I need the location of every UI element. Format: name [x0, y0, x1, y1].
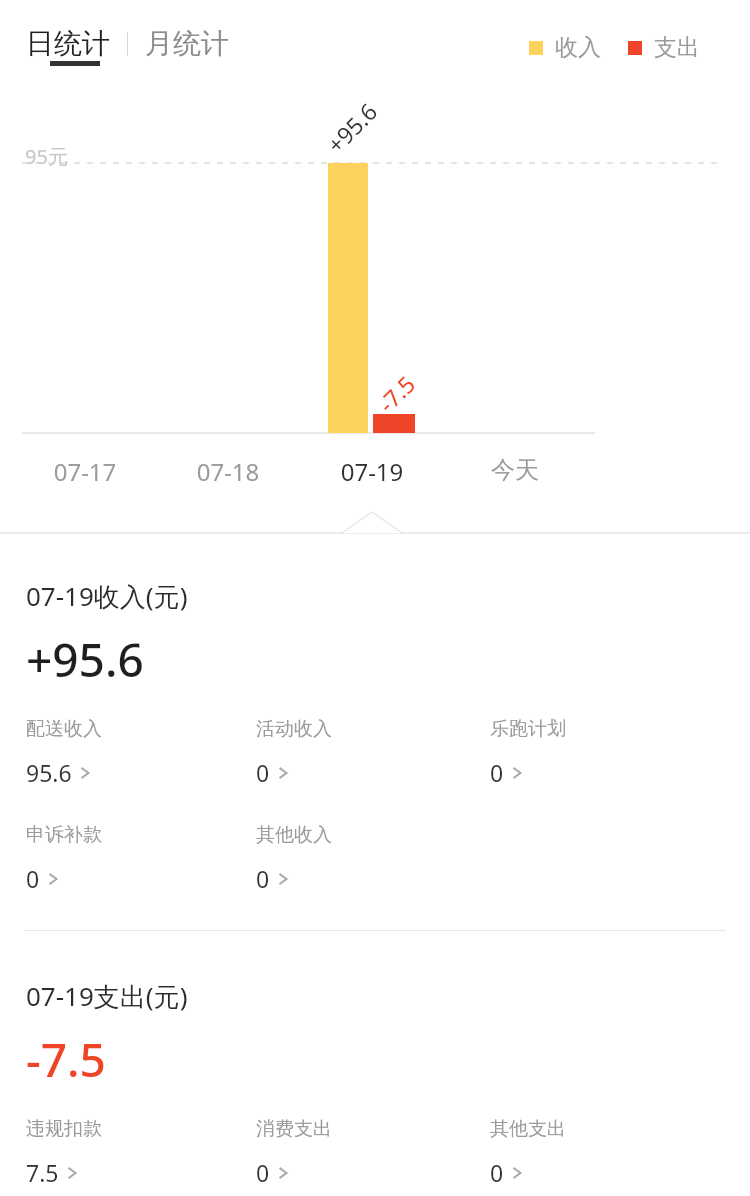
- button[interactable]: 活动收入: [256, 717, 490, 788]
- staticText: 月统计: [145, 26, 229, 61]
- other: 申诉补款: [48, 871, 58, 887]
- button[interactable]: 07-17: [35, 455, 135, 488]
- staticText: +95.6: [26, 628, 144, 691]
- staticText: 日统计: [26, 26, 110, 61]
- staticText: 07-17: [35, 455, 135, 488]
- staticText: 支出: [654, 33, 700, 62]
- staticText: 0: [256, 757, 270, 788]
- other: 活动收入: [278, 765, 288, 781]
- staticText: 0: [490, 757, 504, 788]
- button[interactable]: 月统计: [145, 26, 229, 61]
- other: 配送收入: [80, 765, 90, 781]
- button[interactable]: 其他支出: [490, 1117, 690, 1188]
- other: 消费支出: [278, 1165, 288, 1181]
- staticText: 07-19支出(元): [26, 978, 188, 1014]
- staticText: 其他支出: [490, 1117, 566, 1141]
- button[interactable]: 配送收入: [26, 717, 256, 788]
- staticText: 活动收入: [256, 717, 332, 741]
- other: 其他支出: [512, 1165, 522, 1181]
- staticText: 消费支出: [256, 1117, 332, 1141]
- staticText: 违规扣款: [26, 1117, 102, 1141]
- button[interactable]: 日统计: [26, 26, 110, 61]
- staticText: 配送收入: [26, 717, 102, 741]
- staticText: 乐跑计划: [490, 717, 566, 741]
- button[interactable]: 今天: [465, 455, 565, 485]
- staticText: -7.5: [26, 1028, 106, 1091]
- staticText: 今天: [465, 455, 565, 485]
- staticText: 95元: [25, 143, 68, 170]
- button[interactable]: 其他收入: [256, 823, 490, 894]
- other: 违规扣款: [67, 1165, 77, 1181]
- staticText: 07-19: [322, 455, 422, 488]
- staticText: 0: [490, 1157, 504, 1188]
- staticText: 07-19收入(元): [26, 578, 188, 614]
- button[interactable]: 07-19: [322, 455, 422, 488]
- staticText: 0: [256, 863, 270, 894]
- staticText: 其他收入: [256, 823, 332, 847]
- button[interactable]: 申诉补款: [26, 823, 256, 894]
- staticText: 95.6: [26, 757, 72, 788]
- other: 乐跑计划: [512, 765, 522, 781]
- staticText: -7.5: [371, 368, 421, 419]
- button[interactable]: 违规扣款: [26, 1117, 256, 1188]
- staticText: 收入: [555, 33, 601, 62]
- button[interactable]: 07-18: [178, 455, 278, 488]
- button[interactable]: 乐跑计划: [490, 717, 690, 788]
- other: 其他收入: [278, 871, 288, 887]
- staticText: 7.5: [26, 1157, 59, 1188]
- staticText: 07-18: [178, 455, 278, 488]
- staticText: 0: [256, 1157, 270, 1188]
- staticText: 申诉补款: [26, 823, 102, 847]
- staticText: 0: [26, 863, 40, 894]
- staticText: +95.6: [320, 96, 383, 159]
- button[interactable]: 消费支出: [256, 1117, 490, 1188]
